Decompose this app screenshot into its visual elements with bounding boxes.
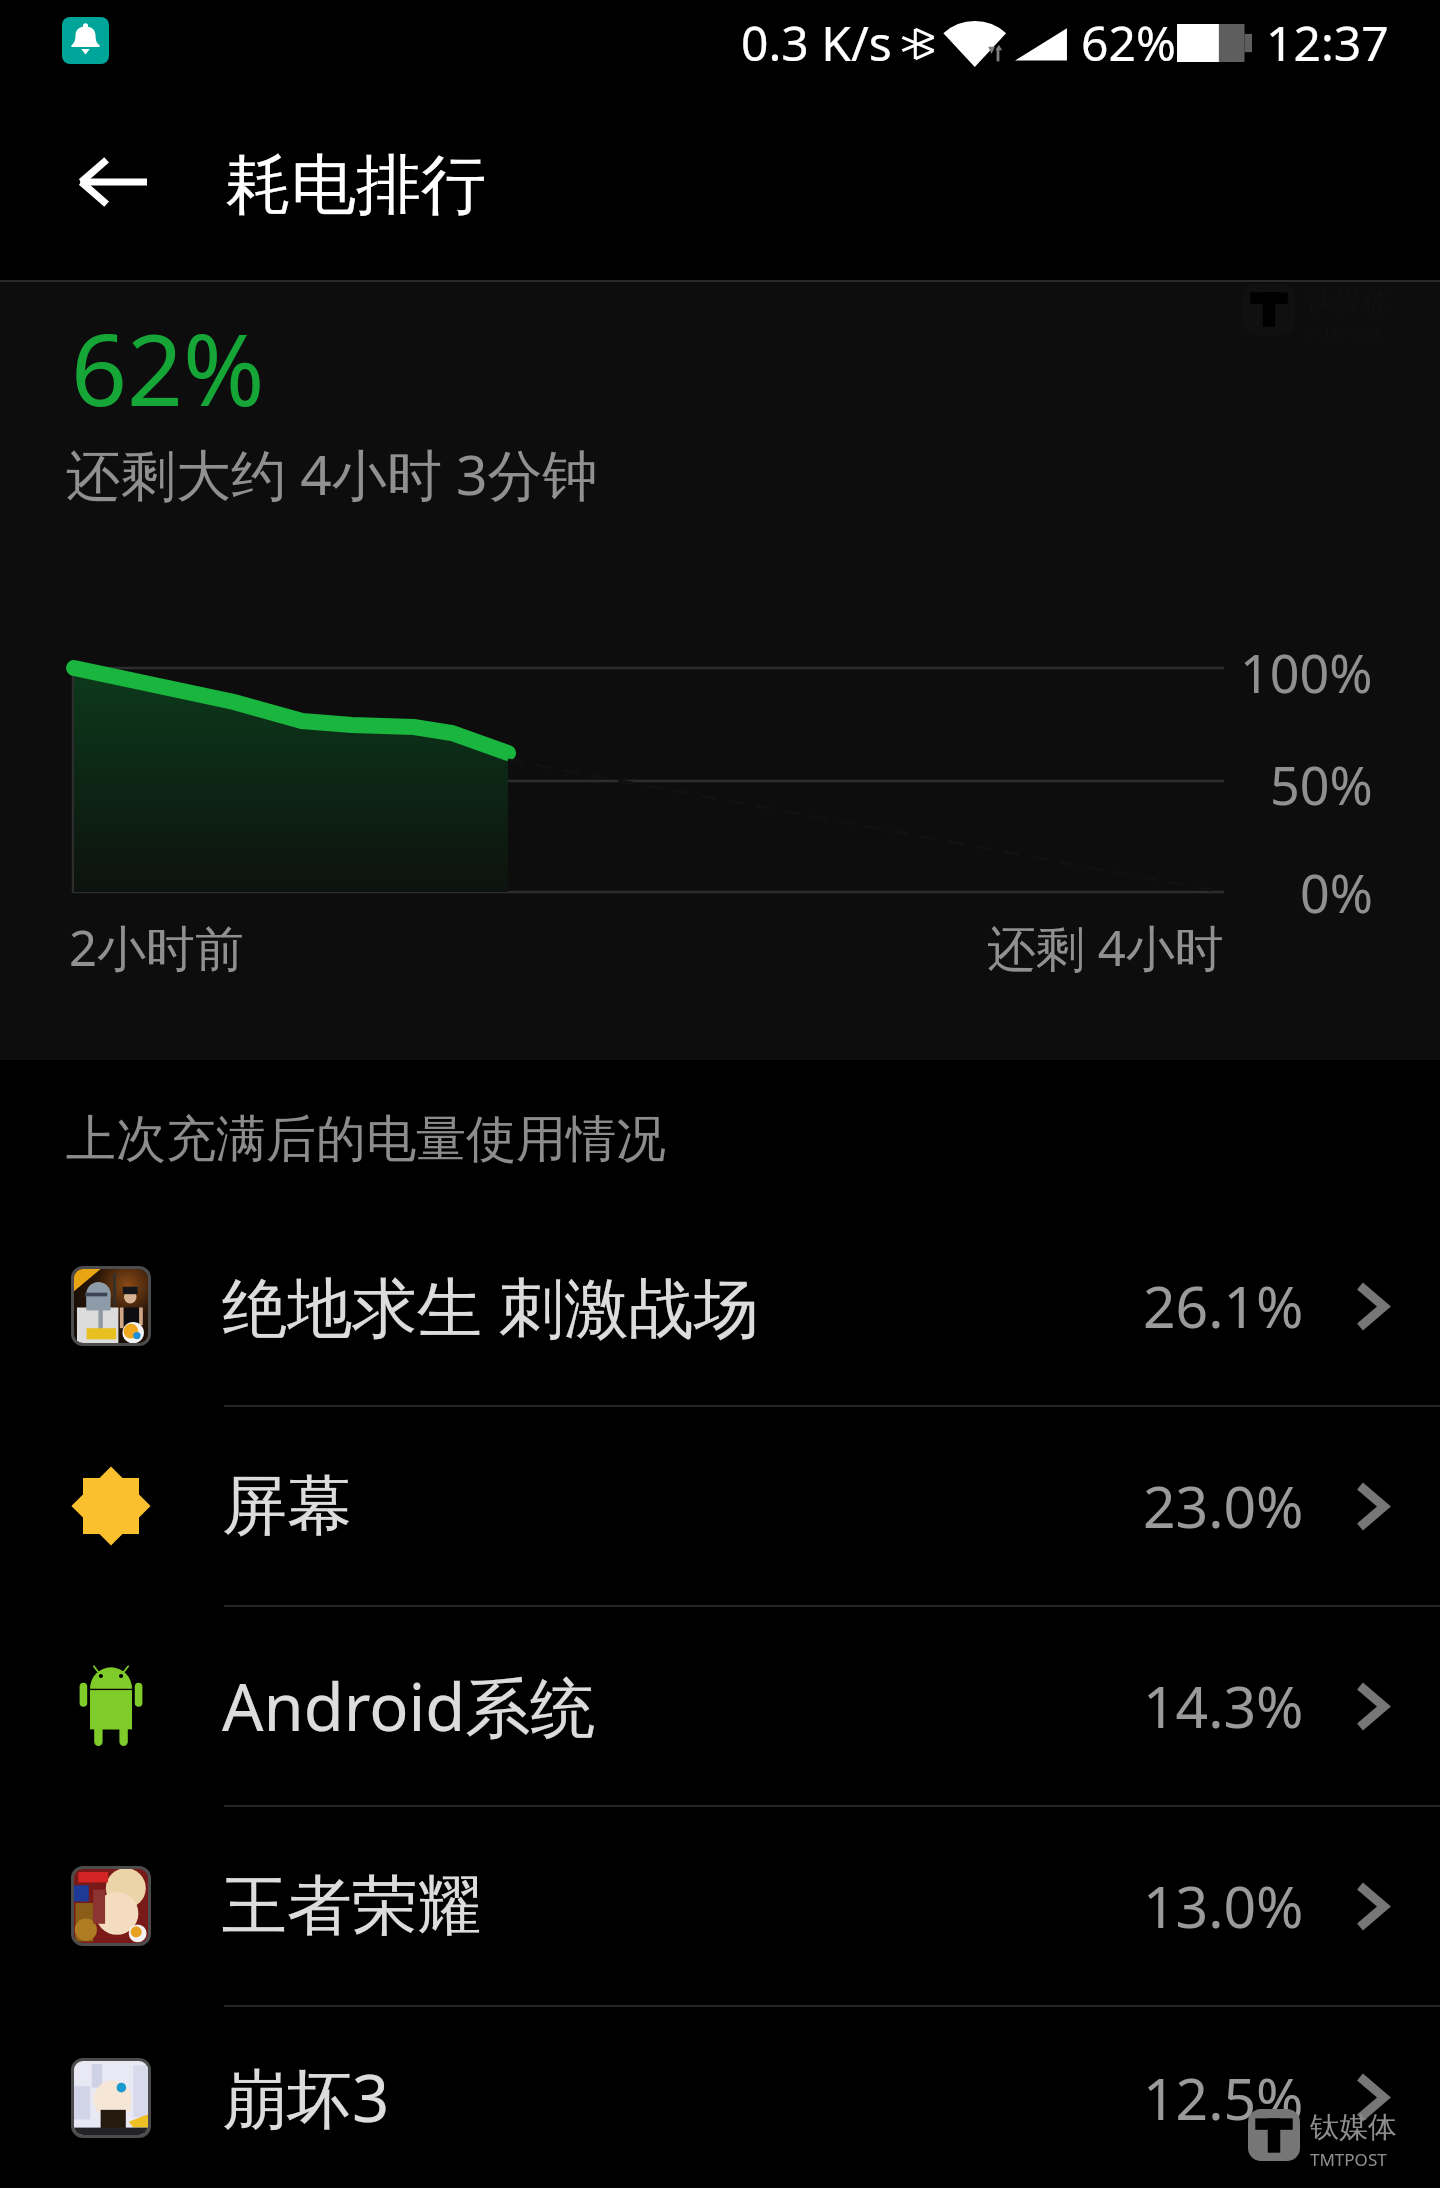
staticText: 12.5% bbox=[1143, 2059, 1304, 2137]
staticText: 2小时前 bbox=[69, 914, 245, 981]
staticText: 王者荣耀 bbox=[222, 1865, 482, 1947]
staticText: 12:37 bbox=[1266, 10, 1389, 75]
staticText: 13.0% bbox=[1143, 1867, 1304, 1945]
staticText: 屏幕 bbox=[222, 1465, 352, 1547]
staticText: 还剩 4小时 bbox=[987, 914, 1224, 981]
staticText: 绝地求生 刺激战场 bbox=[222, 1262, 759, 1351]
button[interactable]: 屏幕 bbox=[0, 1407, 1440, 1605]
staticText: 还剩大约 4小时 3分钟 bbox=[66, 436, 598, 511]
staticText: 26.1% bbox=[1143, 1267, 1304, 1345]
button[interactable]: 绝地求生 刺激战场 bbox=[0, 1207, 1440, 1405]
button[interactable]: 王者荣耀 bbox=[0, 1807, 1440, 2005]
staticText: 崩坏3 bbox=[222, 2053, 390, 2142]
staticText: Android系统 bbox=[222, 1662, 596, 1751]
staticText: 14.3% bbox=[1143, 1667, 1304, 1745]
button[interactable]: 崩坏3 bbox=[0, 2007, 1440, 2188]
staticText: TMTPOST bbox=[1310, 2148, 1387, 2171]
staticText: 50% bbox=[1270, 749, 1373, 820]
button[interactable]: 返回 bbox=[51, 121, 173, 243]
staticText: 耗电排行 bbox=[226, 144, 486, 226]
staticText: 0% bbox=[1300, 857, 1373, 928]
staticText: 100% bbox=[1240, 637, 1373, 708]
staticText: 0.3 K/s bbox=[741, 10, 892, 75]
button[interactable]: Android系统 bbox=[0, 1607, 1440, 1805]
staticText: 钛媒体 bbox=[1310, 2109, 1397, 2146]
staticText: 上次充满后的电量使用情况 bbox=[66, 1108, 666, 1171]
staticText: 62% bbox=[1081, 10, 1176, 75]
staticText: 62% bbox=[71, 301, 265, 434]
staticText: 23.0% bbox=[1143, 1467, 1304, 1545]
